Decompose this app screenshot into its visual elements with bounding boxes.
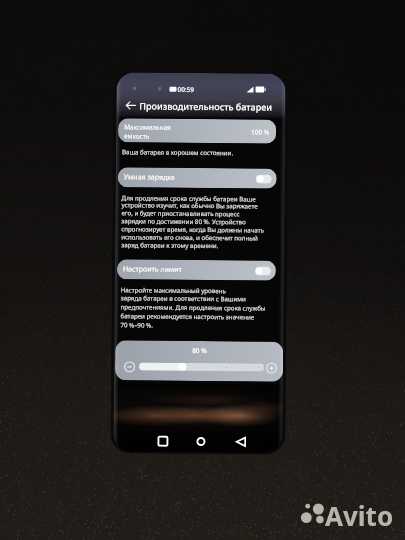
staticText: 00:59 [177, 85, 195, 94]
button[interactable]: Уровень заряда [139, 362, 264, 372]
staticText: Максимальная емкость [124, 122, 171, 140]
staticText: Ваша батарея в хорошем состоянии. [122, 147, 234, 156]
staticText: Для продления срока службы батареи Ваше … [121, 193, 265, 250]
button[interactable]: Уменьшить [124, 361, 135, 372]
staticText: Производительность батареи [139, 99, 272, 113]
staticText: Настройте максимальный уровень заряда ба… [120, 285, 266, 330]
staticText: Настроить лимит [123, 264, 182, 275]
button[interactable]: Главный экран [193, 434, 207, 448]
staticText: 80 % [192, 346, 207, 355]
button[interactable]: Назад [233, 434, 247, 448]
button[interactable]: Назад [122, 97, 137, 112]
button[interactable]: Умная зарядка [118, 167, 277, 189]
button[interactable]: Максимальная емкость [118, 118, 276, 144]
button[interactable]: Последние приложения [155, 434, 169, 448]
button[interactable]: Увеличить [266, 363, 277, 374]
staticText: Умная зарядка [124, 172, 175, 183]
button[interactable]: Настроить лимит [117, 259, 276, 281]
staticText: Avito [325, 498, 394, 533]
staticText: 100 % [251, 127, 269, 137]
